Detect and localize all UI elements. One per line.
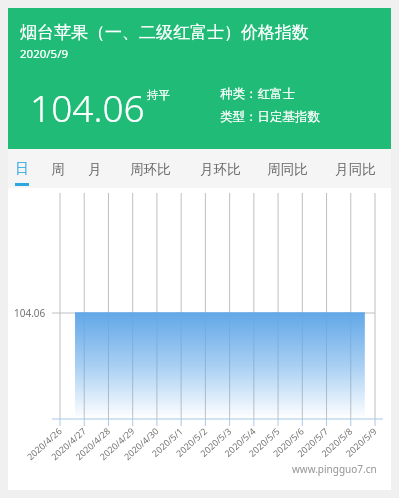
staticText: 周 [51, 161, 65, 178]
staticText: 类型：日定基指数 [220, 109, 320, 125]
staticText: 104.06 [30, 82, 145, 132]
staticText: 持平 [147, 88, 170, 102]
staticText: 种类：红富士 [220, 86, 295, 102]
staticText: 月同比 [335, 161, 376, 178]
staticText: 烟台苹果（一、二级红富士）价格指数 [20, 22, 309, 43]
button[interactable]: 周 [51, 149, 65, 188]
button[interactable]: 周环比 [129, 149, 171, 188]
button[interactable]: 月同比 [334, 149, 376, 188]
staticText: 日 [15, 160, 29, 177]
button[interactable]: 日 [15, 149, 29, 188]
staticText: 月环比 [200, 161, 241, 178]
button[interactable]: 月 [88, 149, 102, 188]
staticText: 周同比 [267, 161, 308, 178]
staticText: 2020/5/9 [20, 46, 69, 62]
staticText: 周环比 [130, 161, 171, 178]
button[interactable]: 周同比 [266, 149, 308, 188]
staticText: 月 [88, 161, 102, 178]
button[interactable]: 月环比 [199, 149, 241, 188]
